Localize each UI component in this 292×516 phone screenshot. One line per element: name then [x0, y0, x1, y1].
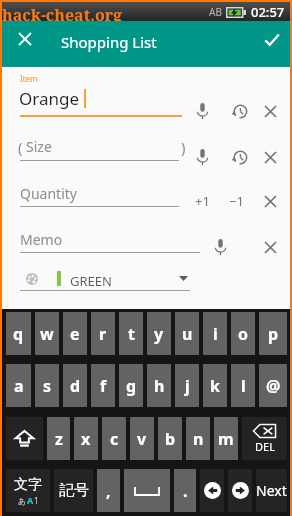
staticText: 02:57	[251, 3, 285, 21]
button[interactable]: Space	[124, 469, 170, 512]
staticText: @	[266, 375, 281, 397]
button[interactable]: Clear	[258, 189, 282, 213]
button[interactable]: l	[231, 364, 255, 407]
staticText: Item	[20, 73, 38, 84]
button[interactable]: f	[91, 364, 115, 407]
staticText: a	[14, 375, 24, 397]
button[interactable]: n	[186, 417, 210, 460]
staticText: DEL	[255, 439, 275, 454]
staticText: m	[218, 428, 234, 450]
button[interactable]: Clear	[258, 145, 282, 169]
staticText: k	[210, 375, 220, 397]
button[interactable]: i	[203, 312, 227, 355]
button[interactable]: 記号	[54, 469, 93, 512]
button[interactable]: 文字	[6, 469, 50, 512]
staticText: z	[55, 428, 63, 450]
button[interactable]: +1	[188, 189, 216, 213]
staticText: (	[18, 137, 23, 157]
staticText: ,	[106, 480, 111, 502]
button[interactable]: Clear	[258, 235, 282, 259]
staticText: g	[126, 375, 137, 397]
staticText: AB	[209, 5, 222, 19]
staticText: o	[238, 323, 249, 345]
button[interactable]: Move cursor right	[228, 469, 252, 512]
button[interactable]: Close	[13, 27, 36, 50]
button[interactable]: m	[214, 417, 238, 460]
button[interactable]: Color	[25, 272, 39, 286]
staticText: y	[154, 323, 164, 345]
staticText: +1	[195, 192, 210, 210]
button[interactable]: Voice input	[190, 99, 214, 123]
staticText: u	[182, 323, 193, 345]
button[interactable]: e	[63, 312, 87, 355]
staticText: 記号	[59, 481, 89, 500]
button[interactable]: p	[259, 312, 287, 355]
button[interactable]: w	[35, 312, 59, 355]
staticText: GREEN	[70, 272, 112, 290]
button[interactable]: Delete	[242, 417, 287, 460]
button[interactable]: j	[175, 364, 199, 407]
staticText: A	[27, 494, 34, 506]
button[interactable]: y	[147, 312, 171, 355]
staticText: h	[154, 375, 165, 397]
button[interactable]: k	[203, 364, 227, 407]
button[interactable]: o	[231, 312, 255, 355]
button[interactable]: t	[119, 312, 143, 355]
staticText: Orange	[19, 87, 80, 110]
staticText: s	[43, 375, 52, 397]
button[interactable]: .	[174, 469, 196, 512]
staticText: Quantity	[20, 184, 77, 203]
staticText: x	[81, 428, 91, 450]
staticText: c	[110, 428, 119, 450]
button[interactable]: −1	[222, 189, 250, 213]
staticText: )	[181, 137, 186, 157]
staticText: b	[165, 428, 176, 450]
button[interactable]: b	[158, 417, 182, 460]
button[interactable]: q	[6, 312, 31, 355]
staticText: r	[99, 323, 107, 345]
staticText: p	[268, 323, 279, 345]
staticText: w	[40, 323, 54, 345]
staticText: n	[193, 428, 204, 450]
staticText: f	[100, 375, 107, 397]
button[interactable]: Clear	[258, 99, 282, 123]
button[interactable]: v	[130, 417, 154, 460]
staticText: Next	[256, 481, 287, 500]
button[interactable]: Shift	[6, 417, 43, 460]
staticText: i	[213, 323, 218, 345]
button[interactable]: r	[91, 312, 115, 355]
button[interactable]: Next	[256, 469, 287, 512]
button[interactable]: Save	[260, 27, 284, 51]
button[interactable]: h	[147, 364, 171, 407]
button[interactable]: s	[35, 364, 59, 407]
staticText: Size	[26, 137, 52, 156]
button[interactable]: Move cursor left	[200, 469, 224, 512]
staticText: d	[70, 375, 81, 397]
button[interactable]: History	[227, 145, 251, 169]
button[interactable]: z	[47, 417, 70, 460]
button[interactable]: d	[63, 364, 87, 407]
button[interactable]: x	[74, 417, 98, 460]
button[interactable]: Voice input	[190, 145, 214, 169]
staticText: j	[185, 375, 190, 397]
staticText: −1	[229, 192, 244, 210]
button[interactable]: ,	[97, 469, 120, 512]
button[interactable]: History	[227, 99, 251, 123]
staticText: .	[183, 480, 188, 502]
staticText: v	[137, 428, 147, 450]
button[interactable]: Voice input	[208, 235, 232, 259]
staticText: 1	[34, 495, 39, 506]
button[interactable]: @	[259, 364, 287, 407]
staticText: q	[13, 323, 24, 345]
button[interactable]: u	[175, 312, 199, 355]
button[interactable]: g	[119, 364, 143, 407]
button[interactable]: c	[102, 417, 126, 460]
staticText: Memo	[20, 230, 63, 249]
staticText: Shopping List	[61, 32, 157, 52]
staticText: l	[241, 375, 246, 397]
staticText: t	[128, 323, 135, 345]
button[interactable]: a	[6, 364, 31, 407]
staticText: あ	[18, 496, 27, 506]
staticText: e	[70, 323, 80, 345]
staticText: 文字	[14, 476, 42, 494]
